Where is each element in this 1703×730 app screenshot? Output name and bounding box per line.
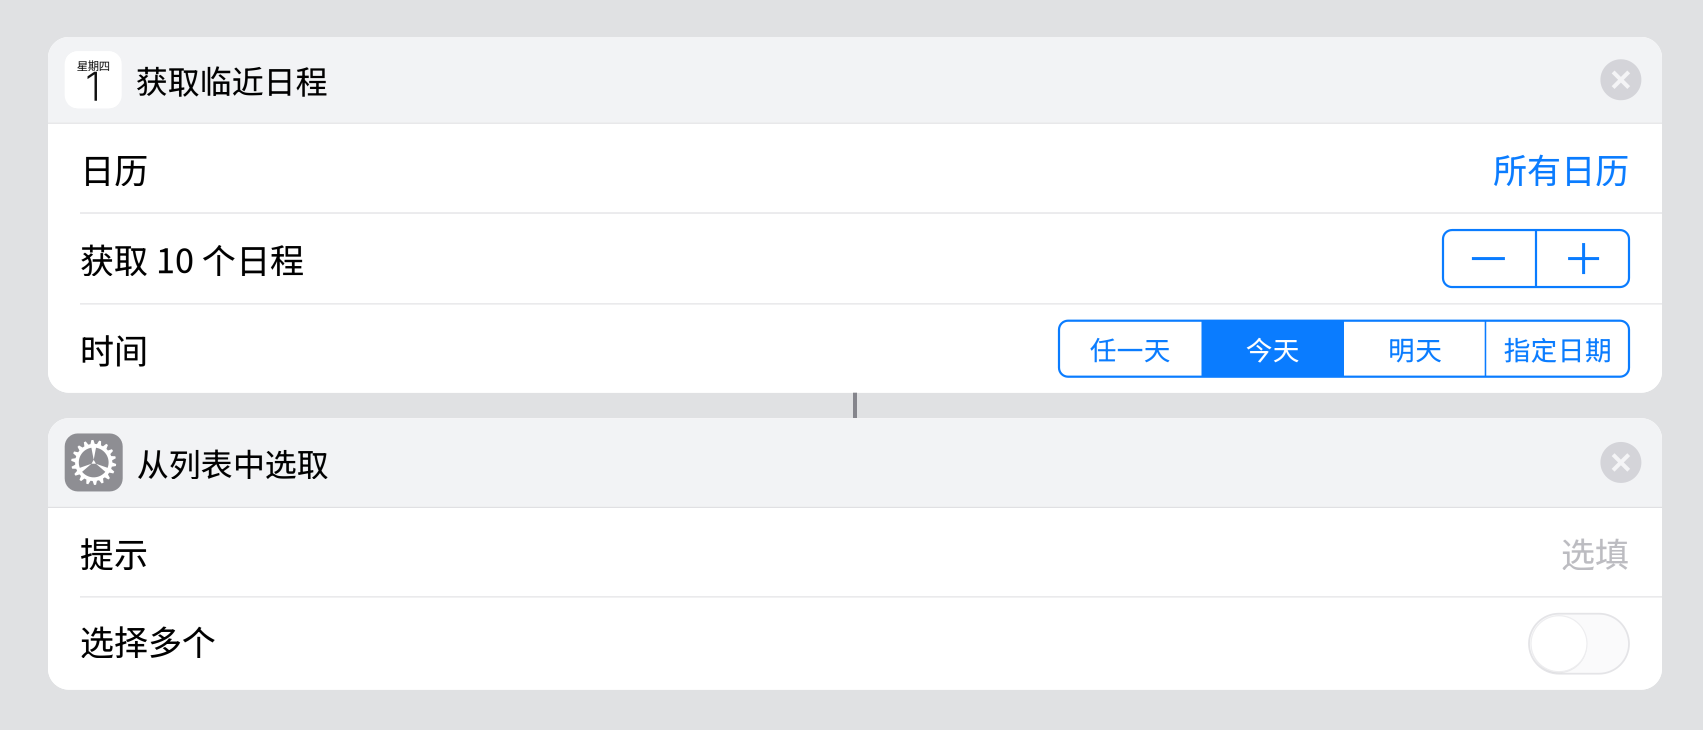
staticText: 今天 bbox=[1246, 329, 1300, 368]
staticText: 指定日期 bbox=[1504, 329, 1612, 368]
button[interactable]: Decrease bbox=[1442, 230, 1535, 287]
staticText: 获取临近日程 bbox=[136, 57, 328, 103]
button[interactable]: 任一天 bbox=[1059, 321, 1201, 377]
button[interactable]: 明天 bbox=[1344, 321, 1486, 377]
staticText: 日历 bbox=[80, 143, 148, 193]
button[interactable]: 指定日期 bbox=[1486, 321, 1629, 377]
staticText: 时间 bbox=[80, 324, 148, 373]
staticText: 所有日历 bbox=[1493, 143, 1629, 193]
staticText: 明天 bbox=[1388, 329, 1442, 368]
staticText: 提示 bbox=[80, 528, 148, 577]
button[interactable]: Increase bbox=[1537, 230, 1630, 287]
button[interactable]: 今天 bbox=[1201, 321, 1344, 377]
staticText: 选择多个 bbox=[80, 616, 216, 665]
button[interactable]: Remove action bbox=[1600, 442, 1641, 483]
staticText: 获取 10 个日程 bbox=[80, 234, 304, 283]
button[interactable]: 日历 bbox=[48, 124, 1662, 212]
button[interactable]: Remove action bbox=[1600, 59, 1641, 100]
staticText: 星期四 bbox=[77, 57, 110, 73]
staticText: 选填 bbox=[1561, 528, 1629, 577]
staticText: 任一天 bbox=[1090, 329, 1171, 368]
button[interactable]: Select multiple bbox=[1529, 614, 1629, 674]
button[interactable]: 提示 bbox=[48, 508, 1662, 596]
staticText: 从列表中选取 bbox=[137, 439, 329, 486]
staticText: 1 bbox=[86, 62, 100, 110]
